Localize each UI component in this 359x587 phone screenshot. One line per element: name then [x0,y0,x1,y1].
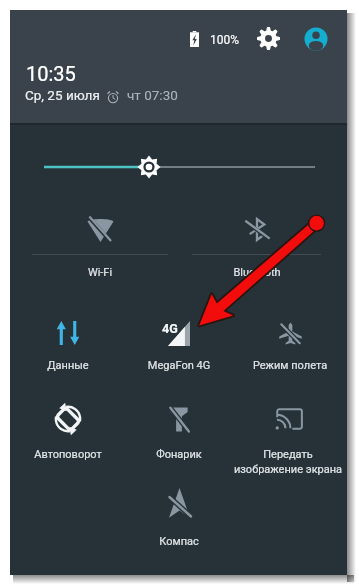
button[interactable]: Фонарик [124,399,234,464]
staticText: Данные [13,359,123,372]
staticText: 10:35 [26,62,76,85]
staticText: MegaFon 4G [124,359,234,372]
staticText: Автоповорот [13,448,123,461]
button[interactable]: Автоповорот [13,399,123,464]
button[interactable]: User profile [304,27,328,51]
staticText: Режим полета [235,359,345,372]
button[interactable]: Компас [124,483,234,551]
staticText: Компас [124,535,234,548]
staticText: чт 07:30 [127,87,178,103]
staticText: 100% [210,33,240,47]
staticText: Wi-Fi [40,266,160,279]
staticText: Ср, 25 июля [25,87,100,103]
button[interactable]: Settings [257,27,280,50]
staticText: 4G [162,321,178,336]
staticText: Bluetooth [197,266,317,279]
staticText: Фонарик [124,448,234,461]
button[interactable]: Данные [13,313,123,375]
button[interactable]: Bluetooth [197,209,317,282]
button[interactable]: 4G [124,313,234,375]
button[interactable]: Wi-Fi [40,209,160,282]
button[interactable]: Режим полета [235,313,345,375]
staticText: Передать изображение экрана [223,448,353,476]
button[interactable]: Brightness [10,138,347,196]
button[interactable]: Передать изображение экрана [223,399,353,478]
